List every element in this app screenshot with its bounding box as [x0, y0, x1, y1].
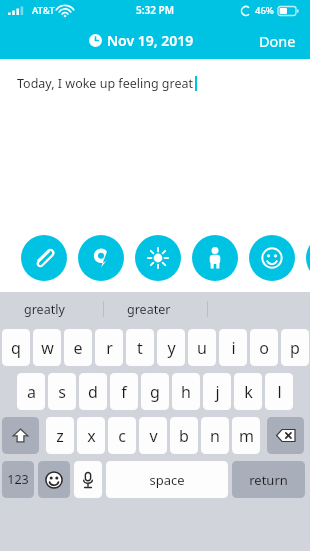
button[interactable]: g [141, 373, 169, 410]
button[interactable]: More [306, 235, 310, 281]
staticText: f [121, 381, 127, 403]
staticText: 123 [7, 471, 29, 488]
button[interactable]: y [157, 329, 185, 366]
staticText: m [239, 425, 254, 447]
button[interactable]: q [2, 329, 30, 366]
staticText: u [197, 337, 207, 359]
staticText: c [118, 425, 126, 447]
staticText: Done [259, 31, 296, 51]
button[interactable]: Weather [135, 235, 181, 281]
staticText: z [56, 425, 64, 447]
staticText: d [88, 381, 98, 403]
button[interactable]: 123 [2, 461, 34, 498]
staticText: h [181, 381, 191, 403]
staticText: Today, I woke up feeling great [17, 75, 194, 92]
staticText: w [41, 337, 54, 359]
button[interactable]: e [64, 329, 92, 366]
button[interactable]: space [106, 461, 228, 498]
staticText: o [259, 337, 269, 359]
staticText: y [167, 337, 176, 359]
staticText: 5:32 PM [136, 3, 174, 17]
button[interactable]: k [234, 373, 262, 410]
button[interactable]: t [126, 329, 154, 366]
button[interactable]: Mood [249, 235, 295, 281]
button[interactable]: p [281, 329, 309, 366]
button[interactable]: Nov 19, 2019 [85, 28, 198, 53]
button[interactable]: Delete [267, 417, 304, 454]
staticText: AT&T [32, 4, 55, 17]
button[interactable]: h [172, 373, 200, 410]
staticText: n [210, 425, 220, 447]
button[interactable]: a [17, 373, 45, 410]
button[interactable]: v [139, 417, 167, 454]
button[interactable]: Activity [192, 235, 238, 281]
staticText: x [87, 425, 96, 447]
button[interactable]: m [232, 417, 260, 454]
button[interactable]: l [265, 373, 293, 410]
button[interactable]: z [46, 417, 74, 454]
button[interactable]: Emoji [38, 461, 70, 498]
button[interactable]: i [219, 329, 247, 366]
button[interactable]: s [48, 373, 76, 410]
button[interactable]: Shift [2, 417, 39, 454]
staticText: g [150, 381, 160, 403]
button[interactable]: Location [78, 235, 124, 281]
staticText: q [11, 337, 21, 359]
button[interactable]: Done [245, 25, 310, 57]
staticText: e [73, 337, 83, 359]
button[interactable]: r [95, 329, 123, 366]
button[interactable]: o [250, 329, 278, 366]
staticText: space [149, 471, 185, 489]
button[interactable]: greatly [24, 301, 65, 318]
button[interactable]: b [170, 417, 198, 454]
staticText: s [58, 381, 66, 403]
staticText: k [244, 381, 253, 403]
button[interactable]: return [232, 461, 305, 498]
staticText: 46% [255, 4, 274, 17]
staticText: a [27, 381, 36, 403]
staticText: r [106, 337, 113, 359]
button[interactable]: w [33, 329, 61, 366]
button[interactable]: u [188, 329, 216, 366]
staticText: v [149, 425, 158, 447]
staticText: b [179, 425, 189, 447]
button[interactable]: j [203, 373, 231, 410]
button[interactable]: greater [127, 301, 171, 318]
staticText: Nov 19, 2019 [107, 31, 194, 50]
button[interactable]: x [77, 417, 105, 454]
button[interactable]: f [110, 373, 138, 410]
button[interactable]: Attachment [21, 235, 67, 281]
staticText: l [277, 381, 282, 403]
staticText: j [215, 381, 220, 403]
button[interactable]: n [201, 417, 229, 454]
button[interactable]: d [79, 373, 107, 410]
staticText: return [249, 471, 288, 489]
staticText: p [290, 337, 300, 359]
staticText: t [137, 337, 143, 359]
button[interactable]: Dictate [74, 461, 102, 498]
button[interactable]: c [108, 417, 136, 454]
staticText: i [231, 337, 236, 359]
